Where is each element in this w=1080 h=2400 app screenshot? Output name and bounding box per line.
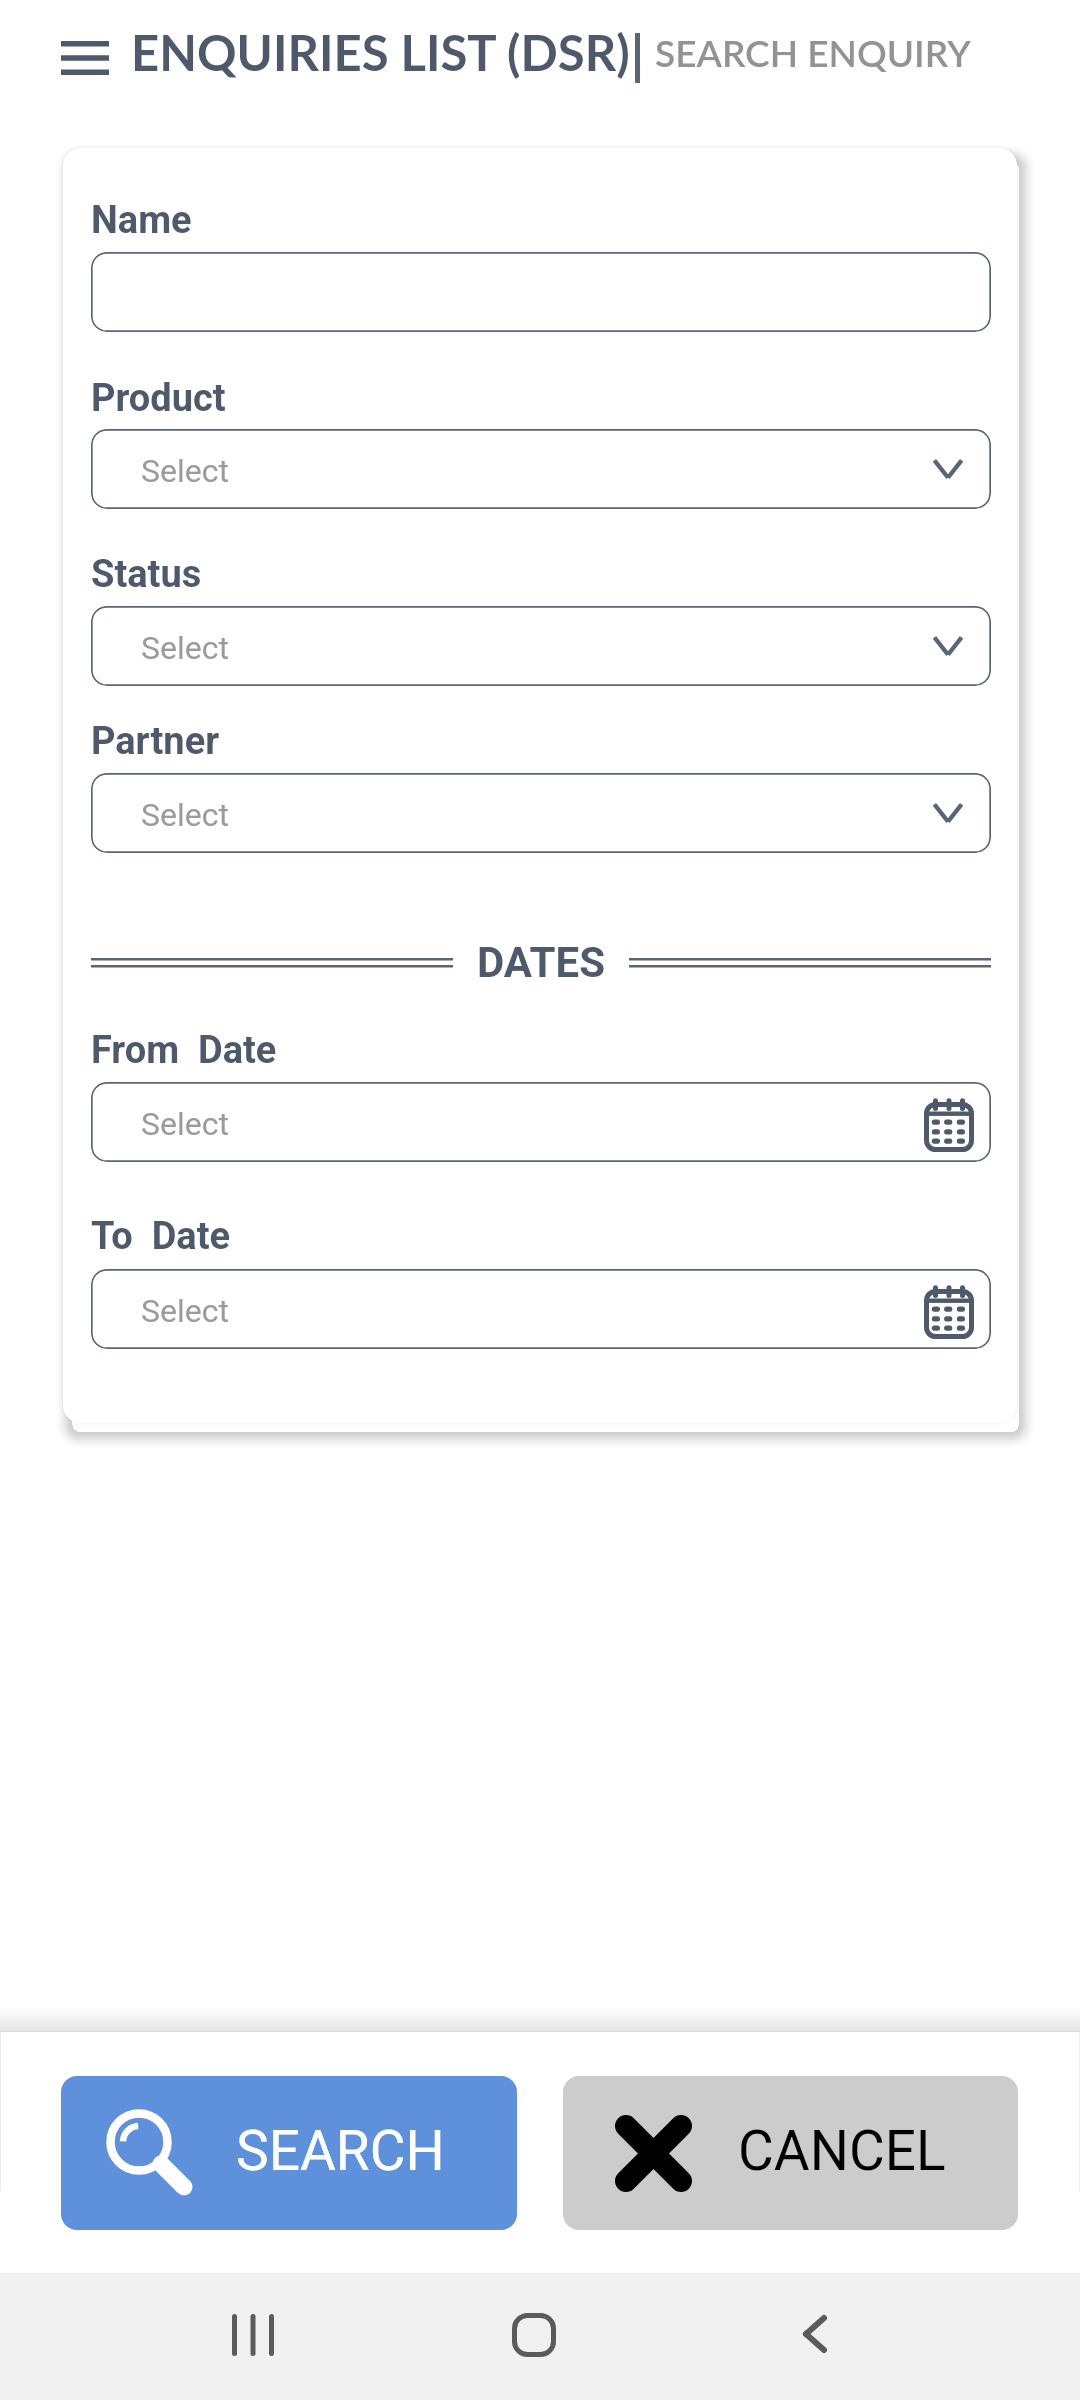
staticText: SEARCH ENQUIRY — [655, 30, 971, 74]
staticText: Select — [141, 796, 229, 834]
staticText: Status — [91, 552, 202, 597]
staticText: ENQUIRIES LIST (DSR) — [131, 23, 630, 82]
staticText: Select — [141, 629, 229, 667]
staticText: Name — [91, 198, 192, 243]
button[interactable]: Select — [91, 606, 991, 686]
staticText: Select — [141, 1292, 229, 1330]
staticText: DATES — [477, 938, 606, 987]
button[interactable]: Select — [91, 1082, 991, 1162]
staticText: From Date — [91, 1028, 277, 1073]
button[interactable] — [91, 252, 991, 332]
staticText: SEARCH — [236, 2119, 445, 2183]
staticText: CANCEL — [738, 2119, 946, 2183]
staticText: Partner — [91, 719, 220, 764]
button[interactable]: CANCEL — [563, 2076, 1018, 2230]
button[interactable]: Home — [474, 2275, 594, 2395]
button[interactable]: SEARCH — [61, 2076, 517, 2230]
button[interactable]: Select — [91, 773, 991, 853]
staticText: Select — [141, 452, 229, 490]
button[interactable]: Select — [91, 429, 991, 509]
staticText: Select — [141, 1105, 229, 1143]
staticText: To Date — [91, 1214, 231, 1259]
staticText: Product — [91, 376, 226, 421]
button[interactable]: Back — [755, 2274, 875, 2394]
button[interactable]: Menu — [47, 26, 123, 90]
button[interactable]: Recents — [193, 2275, 313, 2395]
button[interactable]: Select — [91, 1269, 991, 1349]
